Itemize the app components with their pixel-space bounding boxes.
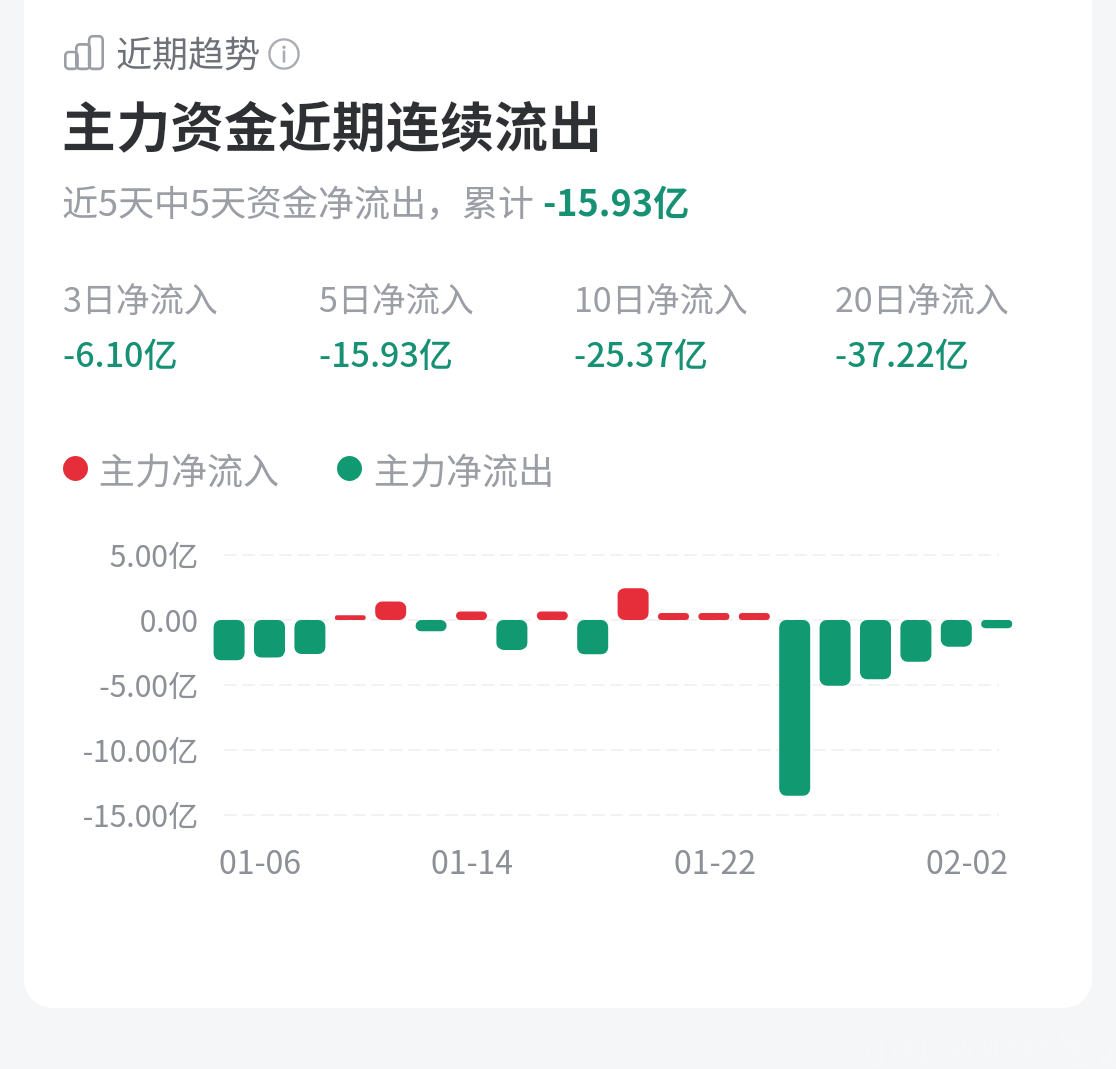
staticText: 01-14	[402, 837, 542, 883]
staticText: 3日净流入	[63, 273, 218, 322]
staticText: 5.00亿	[60, 532, 198, 575]
staticText: 主力净流出	[374, 442, 555, 494]
button[interactable]: 20日净流入	[835, 273, 1085, 377]
staticText: 10日净流入	[574, 273, 748, 322]
staticText: 01-06	[190, 837, 330, 883]
staticText: -5.00亿	[60, 662, 198, 705]
staticText: 02-02	[897, 837, 1037, 883]
staticText: 01-22	[645, 837, 785, 883]
staticText: -15.93亿	[319, 328, 453, 377]
button[interactable]: 近期趋势	[62, 24, 307, 76]
staticText: 近5天中5天资金净流出，累计	[62, 174, 543, 226]
button[interactable]: 3日净流入	[63, 273, 313, 377]
button[interactable]: 说明	[267, 37, 301, 71]
staticText: -37.22亿	[835, 328, 969, 377]
staticText: 20日净流入	[835, 273, 1009, 322]
button[interactable]: 10日净流入	[574, 273, 824, 377]
button[interactable]: 5日净流入	[319, 273, 569, 377]
staticText: 主力资金近期连续流出	[62, 84, 602, 162]
staticText: -15.93亿	[543, 174, 689, 226]
staticText: -15.00亿	[60, 792, 198, 835]
staticText: 近期趋势	[116, 25, 261, 77]
staticText: -10.00亿	[60, 727, 198, 770]
staticText: 5日净流入	[319, 273, 474, 322]
staticText: -6.10亿	[63, 328, 178, 377]
staticText: -25.37亿	[574, 328, 708, 377]
staticText: 0.00	[60, 597, 198, 640]
staticText: 主力净流入	[99, 442, 280, 494]
